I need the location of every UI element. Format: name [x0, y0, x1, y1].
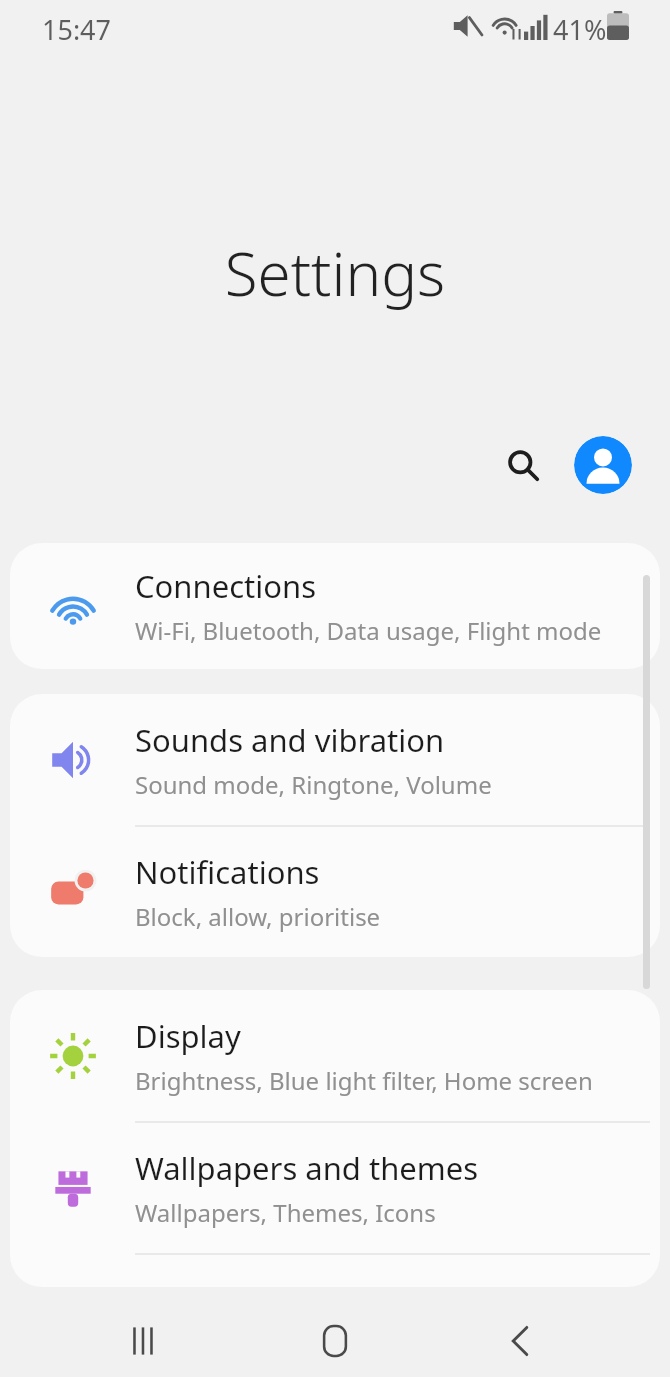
staticText: Sounds and vibration [135, 719, 445, 761]
button[interactable]: Notifications [10, 826, 660, 957]
staticText: Display [135, 1015, 241, 1057]
staticText: Brightness, Blue light filter, Home scre… [135, 1064, 593, 1097]
button[interactable]: Connections [10, 543, 660, 669]
staticText: Block, allow, prioritise [135, 900, 381, 933]
button[interactable]: Home [301, 1307, 369, 1375]
staticText: 41% [553, 11, 607, 48]
button[interactable]: Back [486, 1307, 554, 1375]
staticText: Settings [0, 232, 670, 314]
button[interactable]: Search [494, 436, 552, 494]
button[interactable]: Sounds and vibration [10, 694, 660, 825]
button[interactable]: Wallpapers and themes [10, 1122, 660, 1253]
staticText: Wallpapers, Themes, Icons [135, 1196, 436, 1229]
button[interactable]: Account [574, 436, 632, 494]
staticText: Notifications [135, 851, 320, 893]
staticText: Connections [135, 565, 316, 607]
staticText: Wallpapers and themes [135, 1147, 479, 1189]
button[interactable]: Display [10, 990, 660, 1121]
button[interactable]: Recents [110, 1307, 178, 1375]
staticText: 15:47 [42, 11, 112, 48]
staticText: Wi-Fi, Bluetooth, Data usage, Flight mod… [135, 614, 602, 647]
staticText: Sound mode, Ringtone, Volume [135, 768, 492, 801]
